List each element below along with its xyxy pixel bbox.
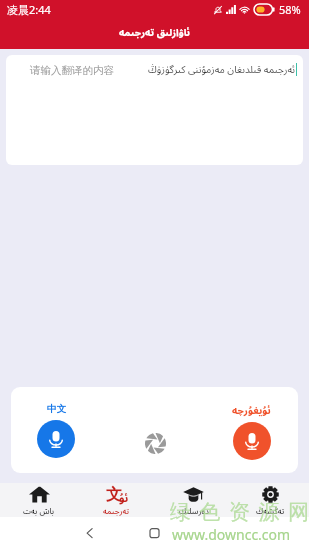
button[interactable]: 请输入翻译的内容: [6, 55, 303, 165]
staticText: 凌晨2:44: [7, 2, 51, 17]
staticText: ئۇيغۇرچە: [232, 403, 271, 417]
button[interactable]: Uyghur microphone: [232, 403, 271, 460]
staticText: 58%: [279, 2, 301, 17]
button[interactable]: تەڭشەك: [232, 483, 309, 516]
button[interactable]: باش بەت: [0, 483, 78, 516]
button[interactable]: 文: [78, 483, 155, 516]
button[interactable]: دەرسلىك: [155, 483, 232, 516]
staticText: ئۇ: [119, 490, 129, 505]
staticText: دەرسلىك: [179, 505, 209, 516]
staticText: 绿色资源网: [170, 499, 309, 525]
staticText: تەرجىمە: [103, 505, 130, 516]
button[interactable]: Chinese microphone: [37, 403, 75, 458]
staticText: www.downcc.com: [172, 525, 291, 544]
staticText: تەڭشەك: [256, 505, 285, 516]
staticText: ئەرجىمە قىلدىغان مەزمۇننى كىرگۈزۈڭ: [148, 62, 295, 76]
staticText: ئاۋازلىق تەرجىمە: [119, 25, 191, 39]
staticText: 中文: [47, 403, 66, 415]
button[interactable]: Camera translate: [142, 430, 168, 456]
staticText: باش بەت: [23, 505, 55, 516]
staticText: 文: [106, 485, 122, 502]
staticText: 请输入翻译的内容: [30, 64, 114, 77]
